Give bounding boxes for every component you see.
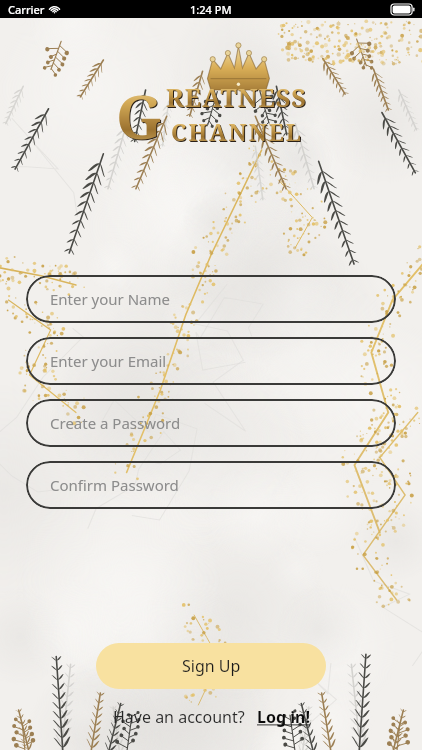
staticText: CHANNEL [171, 116, 303, 147]
staticText: Sign Up [182, 655, 241, 677]
staticText: REATNESS [167, 81, 308, 115]
staticText: Enter your Name [50, 289, 170, 309]
button[interactable]: Enter your Email [26, 337, 396, 385]
button[interactable]: Log in! [257, 706, 310, 728]
staticText: G [117, 76, 164, 158]
staticText: 1:24 PM [190, 2, 232, 17]
staticText: REATNESS [166, 80, 307, 114]
button[interactable]: Sign Up [96, 643, 326, 689]
staticText: Enter your Email [50, 351, 167, 371]
staticText: G [116, 75, 163, 157]
button[interactable]: Create a Password [26, 399, 396, 447]
button[interactable]: Confirm Password [26, 461, 396, 509]
staticText: Carrier [8, 2, 45, 17]
staticText: Log in! [257, 706, 310, 728]
staticText: Have an account? [113, 706, 245, 728]
staticText: Create a Password [50, 413, 181, 433]
staticText: Confirm Password [50, 475, 179, 495]
staticText: CHANNEL [172, 117, 304, 148]
button[interactable]: Enter your Name [26, 275, 396, 323]
